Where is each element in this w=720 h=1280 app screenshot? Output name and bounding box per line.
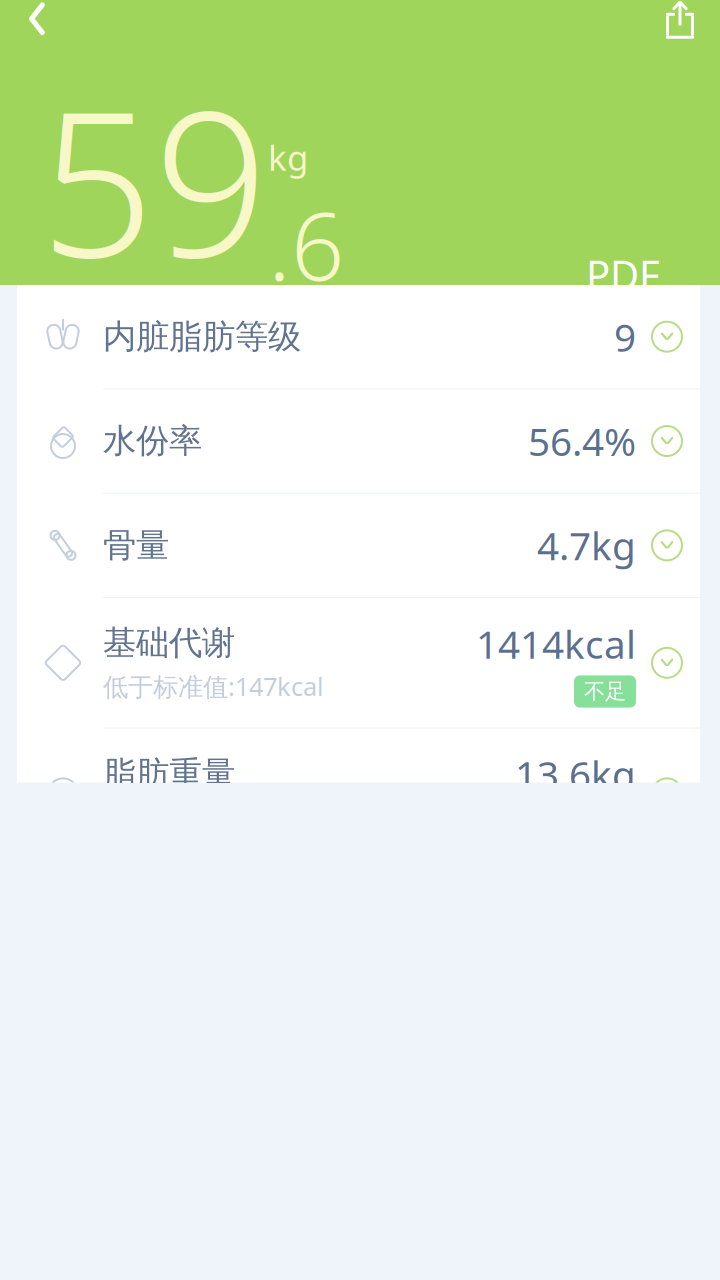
staticText: 13.6kg xyxy=(515,749,636,800)
button[interactable]: 基础代谢 xyxy=(17,598,700,729)
staticText: 水份率 xyxy=(103,421,202,461)
button[interactable]: Back xyxy=(0,0,52,44)
button[interactable]: Share xyxy=(662,0,720,47)
button[interactable]: PDF xyxy=(576,242,670,312)
staticText: 基础代谢 xyxy=(103,622,235,663)
staticText: 59 xyxy=(40,47,268,312)
staticText: 1414kcal xyxy=(476,618,636,669)
button[interactable]: 骨量 xyxy=(17,494,700,598)
staticText: 骨量 xyxy=(103,525,169,566)
button[interactable]: 内脏脂肪等级 xyxy=(17,285,700,389)
button[interactable]: 水份率 xyxy=(17,389,700,494)
staticText: PDF xyxy=(586,248,660,301)
staticText: 56.4% xyxy=(528,415,636,467)
staticText: 9 xyxy=(614,311,636,362)
staticText: 脂肪重量 xyxy=(103,753,235,794)
staticText: 不足 xyxy=(584,678,626,705)
staticText: .6 xyxy=(268,182,344,306)
button[interactable]: 脂肪重量 xyxy=(17,729,700,859)
staticText: kg xyxy=(268,134,308,180)
staticText: 4.7kg xyxy=(537,520,636,571)
staticText: 内脏脂肪等级 xyxy=(103,316,301,357)
staticText: 低于标准值:147kcal xyxy=(103,669,324,703)
